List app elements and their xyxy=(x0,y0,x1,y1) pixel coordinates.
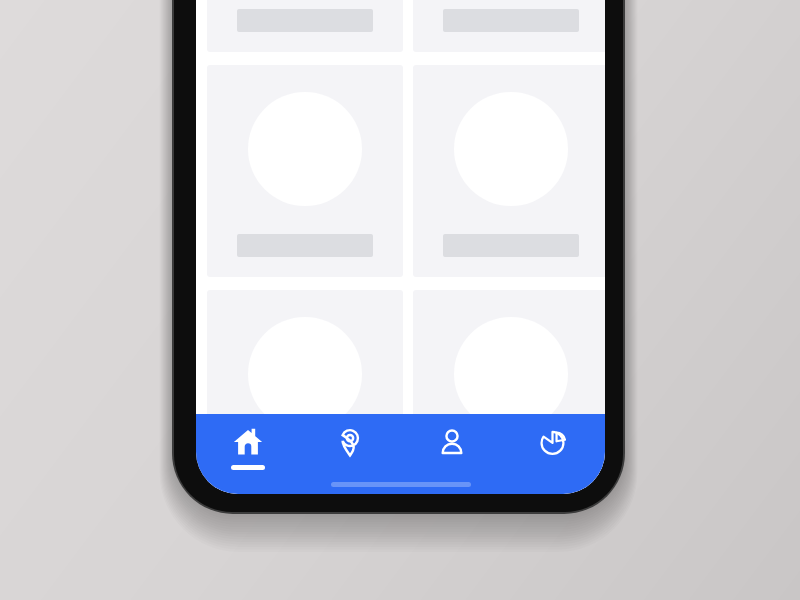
button[interactable] xyxy=(207,0,403,52)
button[interactable]: Profile xyxy=(401,414,503,482)
button[interactable] xyxy=(413,0,605,52)
button[interactable] xyxy=(207,290,403,494)
button[interactable]: Statistics xyxy=(503,414,605,482)
button[interactable]: Places xyxy=(299,414,401,482)
button[interactable] xyxy=(413,290,605,494)
button[interactable] xyxy=(207,65,403,277)
button[interactable]: Home xyxy=(196,414,299,482)
button[interactable] xyxy=(413,65,605,277)
